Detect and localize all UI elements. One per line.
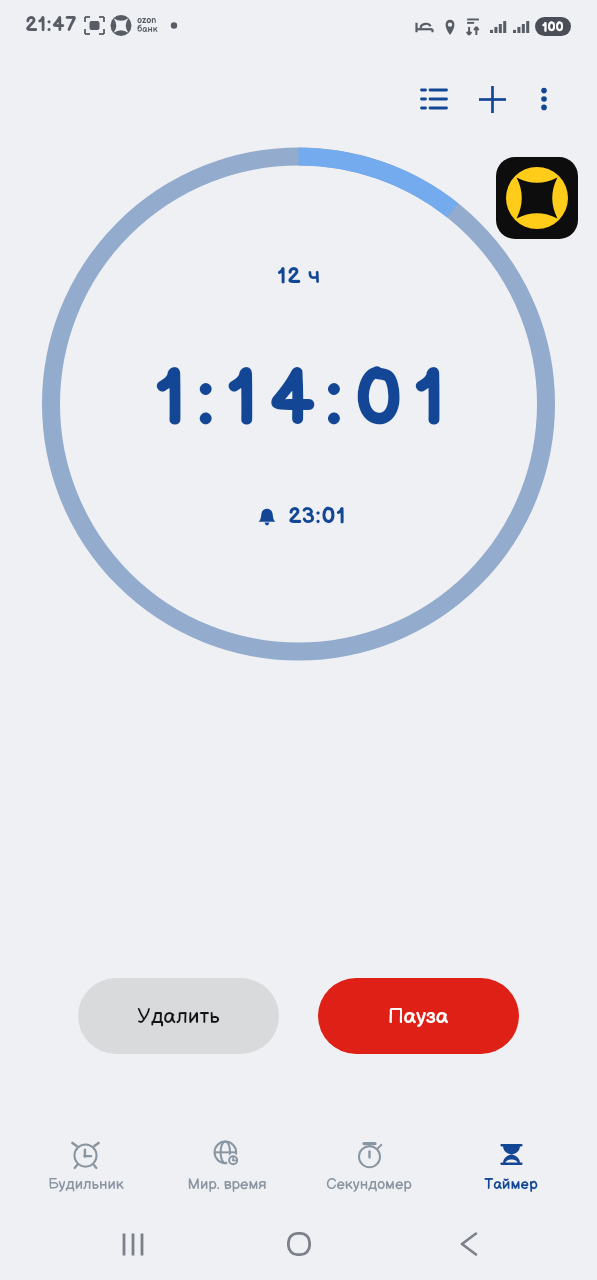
button[interactable]: Таймер (440, 1135, 582, 1197)
button[interactable]: Удалить (78, 978, 279, 1054)
button[interactable]: Пауза (318, 978, 519, 1054)
staticText: 21:47 (25, 12, 77, 37)
button[interactable]: More options (518, 73, 570, 125)
button[interactable]: Секундомер (298, 1135, 440, 1197)
staticText: 12 ч (277, 262, 321, 290)
button[interactable]: Add timer (466, 73, 518, 125)
button[interactable]: Preset list (408, 73, 460, 125)
staticText: 23:01 (288, 502, 347, 530)
staticText: Секундомер (326, 1175, 412, 1193)
staticText: Будильник (48, 1175, 124, 1193)
button[interactable]: Back (444, 1219, 494, 1269)
staticText: Мир. время (187, 1175, 267, 1193)
button[interactable]: Мир. время (156, 1135, 298, 1197)
staticText: 100 (542, 19, 564, 35)
button[interactable]: App shortcut (496, 157, 578, 239)
button[interactable]: Будильник (15, 1135, 156, 1197)
button[interactable]: Home (274, 1219, 324, 1269)
staticText: Удалить (137, 1004, 220, 1029)
staticText: Пауза (388, 1004, 449, 1029)
staticText: 1:14:01 (154, 353, 457, 448)
staticText: ozon банк (137, 15, 158, 34)
button[interactable]: Recent apps (108, 1219, 158, 1269)
staticText: Таймер (484, 1175, 538, 1193)
